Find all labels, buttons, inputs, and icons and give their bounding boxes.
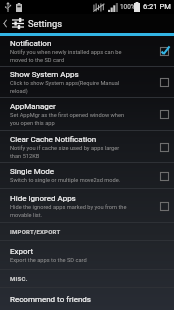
button[interactable]: Show System Apps (0, 67, 174, 97)
staticText: Single Mode (10, 167, 55, 176)
button[interactable]: Checked (154, 39, 174, 63)
staticText: Click to show System apps(Require Manual… (10, 80, 130, 94)
button[interactable]: Hide Ignored Apps (0, 189, 174, 222)
button[interactable]: AppManager (0, 98, 174, 130)
button[interactable]: Unchecked (154, 194, 174, 218)
staticText: Hide the ignored apps marked by you from… (10, 204, 130, 218)
staticText: IMPORT/EXPORT (10, 228, 61, 235)
button[interactable]: Recommend to friends (0, 288, 174, 310)
staticText: Hide Ignored Apps (10, 194, 76, 203)
staticText: Recommend to friends (10, 295, 91, 304)
staticText: Export the apps to the SD card (10, 257, 87, 264)
staticText: Switch to single or multiple move2sd mod… (10, 177, 121, 184)
staticText: Set AppMgr as the first opened window wh… (10, 112, 130, 126)
staticText: Export (10, 247, 34, 256)
staticText: Notification (10, 39, 52, 48)
button[interactable]: Notification (0, 36, 174, 66)
staticText: AppManager (10, 102, 56, 111)
button[interactable]: Navigate up (0, 14, 174, 33)
button[interactable]: Export (0, 241, 174, 269)
staticText: Settings (28, 18, 62, 29)
button[interactable]: Unchecked (154, 70, 174, 94)
staticText: Notify you when newly installed apps can… (10, 49, 130, 63)
staticText: Show System Apps (10, 70, 79, 79)
staticText: 100% (120, 3, 136, 11)
button[interactable]: Unchecked (154, 164, 174, 188)
button[interactable]: Unchecked (154, 135, 174, 159)
button[interactable]: Single Mode (0, 163, 174, 188)
staticText: MISC. (10, 275, 28, 282)
staticText: Clear Cache Notification (10, 135, 97, 144)
button[interactable]: Clear Cache Notification (0, 131, 174, 162)
button[interactable]: Unchecked (154, 102, 174, 126)
staticText: Notify you if cache size used by apps la… (10, 145, 130, 159)
staticText: 6:21 PM (143, 2, 171, 11)
